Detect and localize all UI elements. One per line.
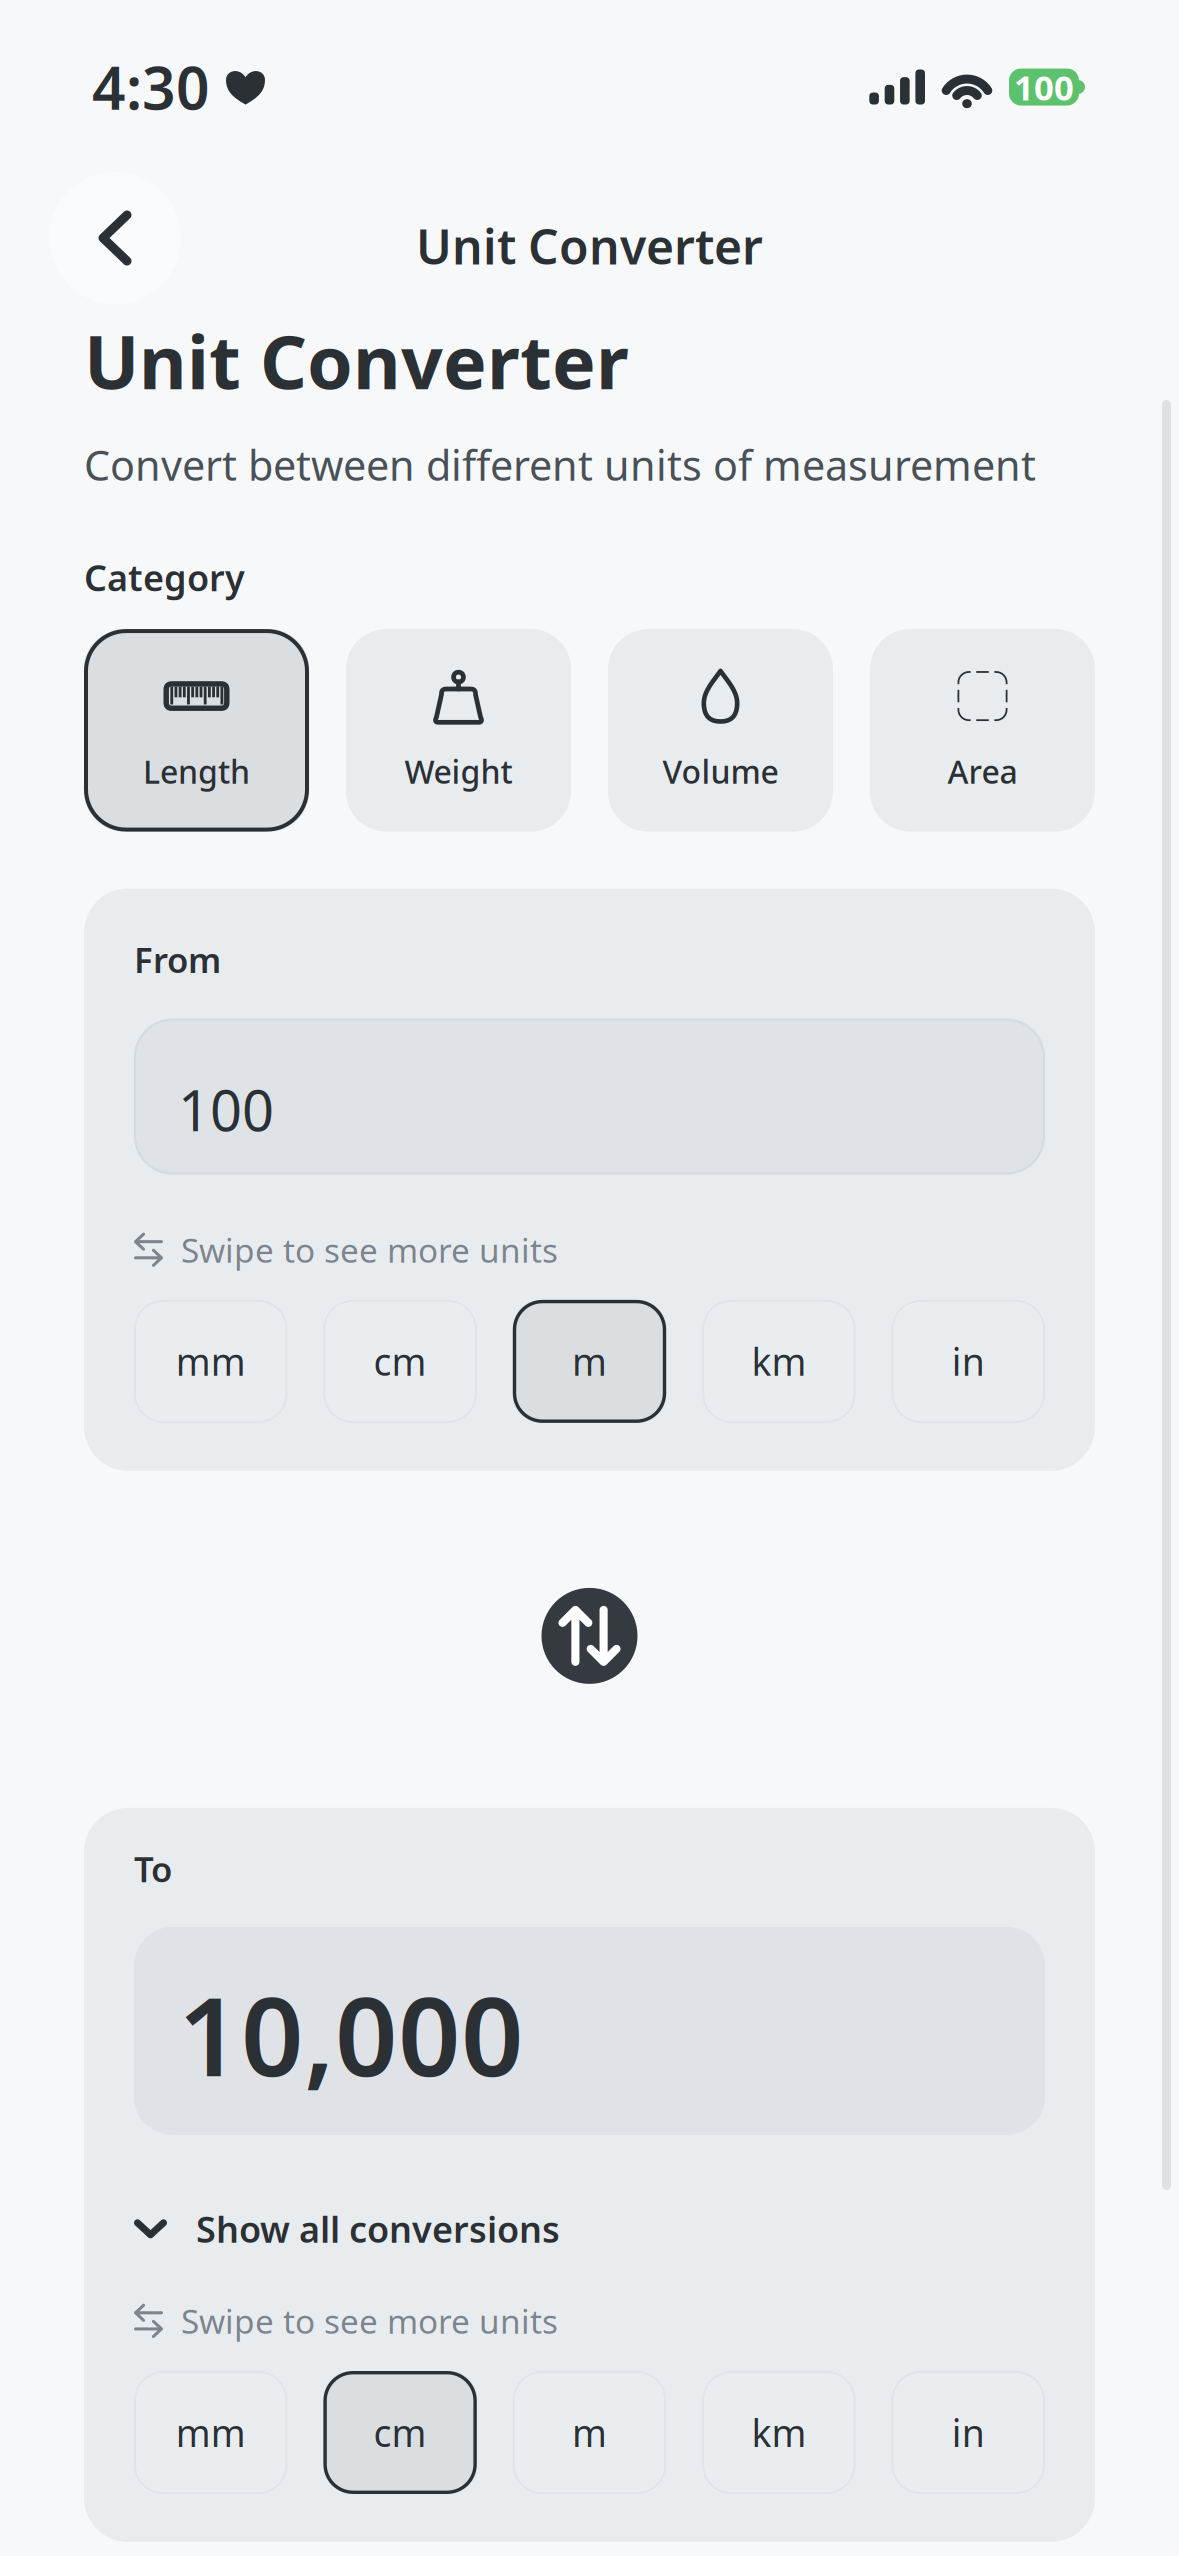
button[interactable]: Length bbox=[84, 629, 309, 832]
button[interactable]: m bbox=[513, 1300, 666, 1423]
button[interactable]: Volume bbox=[608, 629, 833, 832]
button[interactable]: cm bbox=[323, 1300, 477, 1423]
staticText: 10,000 bbox=[178, 1961, 524, 2106]
button[interactable]: in bbox=[892, 2371, 1045, 2494]
staticText: Length bbox=[143, 750, 250, 793]
button[interactable]: mm bbox=[134, 2371, 287, 2494]
staticText: km bbox=[751, 2408, 806, 2457]
button[interactable]: km bbox=[702, 2371, 856, 2494]
staticText: 100 bbox=[178, 1072, 274, 1147]
button[interactable]: Show all conversions bbox=[134, 2205, 560, 2253]
staticText: Area bbox=[947, 750, 1017, 793]
staticText: mm bbox=[176, 1337, 246, 1386]
button[interactable]: mm bbox=[134, 1300, 287, 1423]
staticText: in bbox=[952, 1337, 985, 1386]
staticText: Convert between different units of measu… bbox=[84, 437, 1036, 492]
button[interactable]: Weight bbox=[346, 629, 571, 832]
staticText: To bbox=[134, 1846, 172, 1892]
button[interactable]: in bbox=[892, 1300, 1045, 1423]
staticText: 4:30 bbox=[92, 48, 210, 126]
button[interactable]: Swap units bbox=[541, 1588, 637, 1684]
staticText: cm bbox=[374, 2408, 427, 2457]
button[interactable]: cm bbox=[323, 2371, 477, 2494]
button[interactable]: m bbox=[513, 2371, 666, 2494]
staticText: mm bbox=[176, 2408, 246, 2457]
staticText: km bbox=[751, 1337, 806, 1386]
staticText: 100 bbox=[1014, 64, 1074, 110]
staticText: Volume bbox=[662, 750, 778, 793]
staticText: m bbox=[572, 1337, 607, 1386]
staticText: Weight bbox=[404, 750, 512, 793]
staticText: Unit Converter bbox=[416, 214, 763, 278]
staticText: From bbox=[134, 937, 221, 983]
staticText: m bbox=[572, 2408, 607, 2457]
staticText: Swipe to see more units bbox=[181, 1228, 558, 1272]
staticText: Unit Converter bbox=[84, 312, 629, 409]
staticText: Show all conversions bbox=[196, 2205, 560, 2253]
staticText: in bbox=[952, 2408, 985, 2457]
button[interactable]: Back bbox=[49, 172, 181, 304]
staticText: cm bbox=[374, 1337, 427, 1386]
staticText: Swipe to see more units bbox=[181, 2299, 558, 2343]
staticText: Category bbox=[84, 553, 245, 601]
button[interactable]: km bbox=[702, 1300, 856, 1423]
button[interactable]: Area bbox=[870, 629, 1095, 832]
